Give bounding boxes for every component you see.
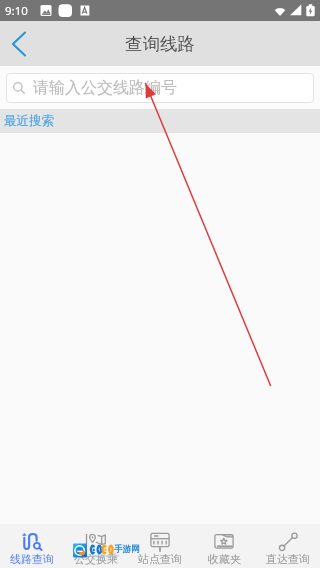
staticText: 请输入公交线路编号 <box>33 78 177 98</box>
button[interactable]: 站点查询 <box>128 524 192 568</box>
button[interactable]: 线路查询 <box>0 524 64 568</box>
staticText: 站点查询 <box>138 552 182 566</box>
button[interactable]: 直达查询 <box>256 524 320 568</box>
staticText: 查询线路 <box>125 33 195 55</box>
button[interactable]: 收藏夹 <box>192 524 256 568</box>
staticText: 9:10 <box>5 3 28 19</box>
staticText: 公交换乘 <box>74 552 118 566</box>
staticText: 最近搜索 <box>4 113 54 129</box>
staticText: www.gogo.cn <box>92 553 119 559</box>
button[interactable]: 公交换乘 <box>64 524 128 568</box>
button[interactable]: Back <box>0 21 40 66</box>
staticText: 手游网 <box>114 544 140 555</box>
staticText: 直达查询 <box>266 552 310 566</box>
staticText: 收藏夹 <box>208 552 241 566</box>
staticText: 线路查询 <box>10 552 54 566</box>
button[interactable]: 请输入公交线路编号 <box>6 73 314 103</box>
